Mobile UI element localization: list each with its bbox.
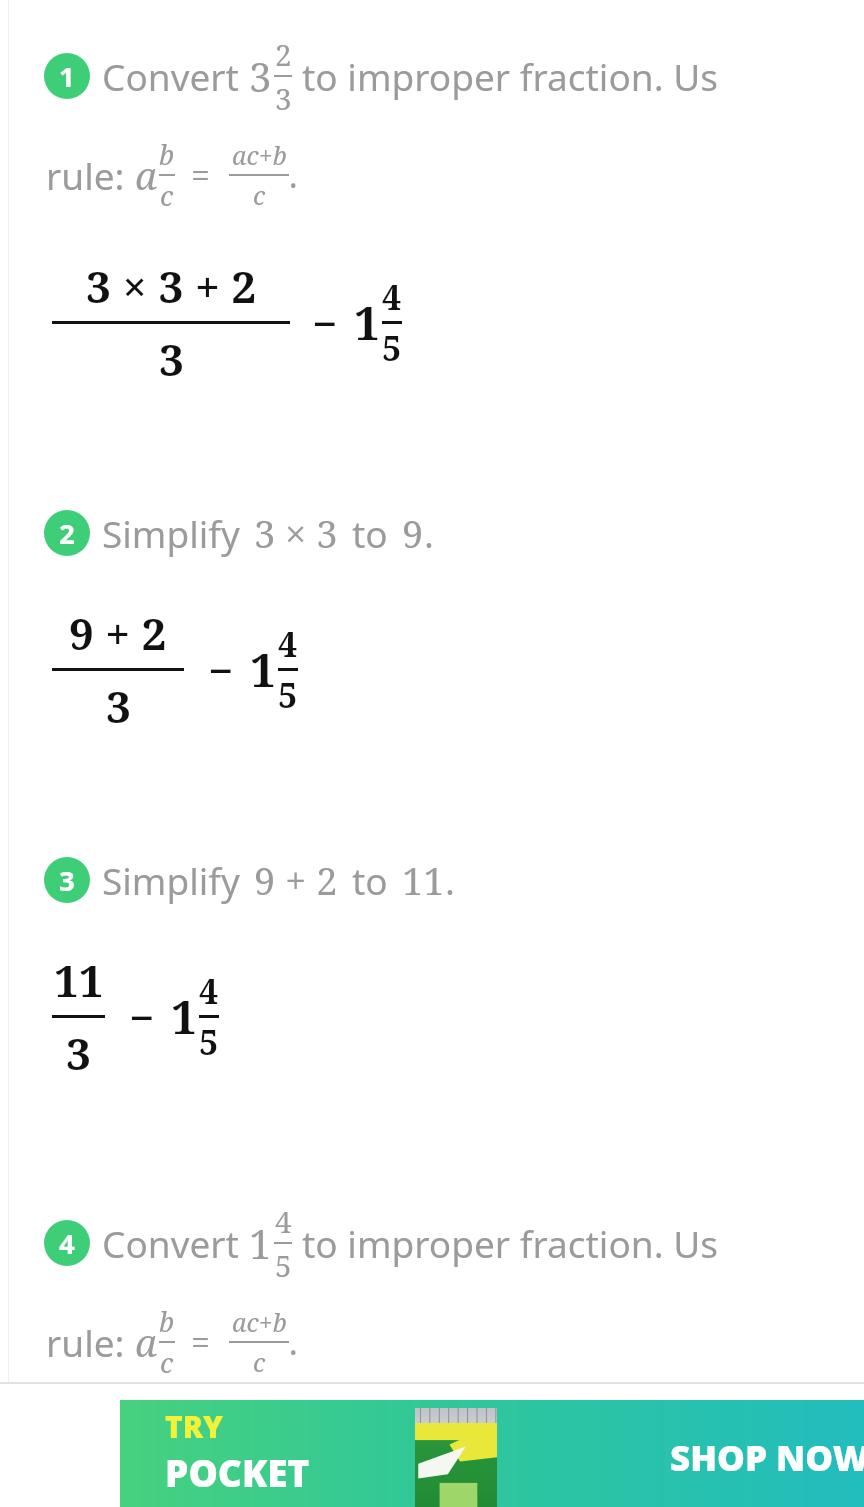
staticText: 4: [382, 274, 402, 320]
staticText: rule:: [46, 1317, 135, 1367]
staticText: Simplify: [102, 855, 240, 905]
staticText: 4: [275, 1201, 292, 1241]
staticText: 1: [249, 1216, 272, 1270]
staticText: a: [135, 149, 158, 201]
staticText: 9: [402, 507, 424, 559]
staticText: .: [289, 152, 298, 198]
staticText: 3: [66, 1023, 91, 1083]
staticText: 2: [59, 514, 75, 552]
staticText: =: [191, 1319, 211, 1365]
staticText: .: [424, 508, 434, 558]
staticText: to improper fraction. Us: [302, 51, 718, 101]
staticText: to improper fraction. Us: [302, 1218, 718, 1268]
staticText: SHOP NOW: [670, 1434, 864, 1482]
staticText: 3: [249, 49, 272, 103]
staticText: 3: [275, 78, 292, 118]
staticText: TRY: [165, 1406, 223, 1447]
staticText: 4: [199, 968, 219, 1014]
staticText: POCKET: [165, 1447, 310, 1497]
staticText: 5: [278, 672, 298, 718]
staticText: to: [352, 508, 388, 558]
staticText: ac+b: [232, 138, 287, 172]
staticText: 1: [354, 291, 380, 354]
staticText: c: [160, 1344, 174, 1381]
staticText: to: [352, 855, 388, 905]
staticText: c: [253, 178, 266, 212]
staticText: =: [191, 152, 211, 198]
staticText: Convert: [102, 51, 239, 101]
staticText: c: [160, 177, 174, 214]
staticText: 1: [250, 638, 276, 701]
staticText: rule:: [46, 150, 135, 200]
staticText: .: [445, 855, 455, 905]
staticText: c: [253, 1345, 266, 1379]
staticText: 5: [382, 325, 402, 371]
staticText: 5: [199, 1019, 219, 1065]
staticText: −: [208, 640, 234, 700]
staticText: b: [159, 136, 175, 173]
staticText: Simplify: [102, 508, 240, 558]
staticText: b: [159, 1303, 175, 1340]
staticText: 2: [275, 34, 292, 74]
staticText: 3 × 3: [254, 507, 338, 559]
staticText: 11: [54, 950, 104, 1010]
staticText: ac+b: [232, 1305, 287, 1339]
staticText: 3: [159, 329, 184, 389]
staticText: 1: [59, 57, 75, 95]
staticText: 9 + 2: [69, 603, 167, 663]
staticText: 9 + 2: [254, 854, 338, 906]
staticText: 11: [402, 854, 445, 906]
staticText: 3 × 3 + 2: [86, 256, 257, 316]
button[interactable]: Trident Pocket Pack advertisement, Shop …: [120, 1400, 864, 1507]
staticText: 4: [59, 1224, 75, 1262]
staticText: Convert: [102, 1218, 239, 1268]
staticText: 4: [278, 621, 298, 667]
staticText: a: [135, 1316, 158, 1368]
staticText: −: [312, 293, 338, 353]
staticText: 3: [59, 861, 75, 899]
staticText: .: [289, 1319, 298, 1365]
staticText: −: [129, 987, 155, 1047]
staticText: 1: [171, 985, 197, 1048]
staticText: 5: [275, 1245, 292, 1285]
staticText: 3: [106, 676, 131, 736]
